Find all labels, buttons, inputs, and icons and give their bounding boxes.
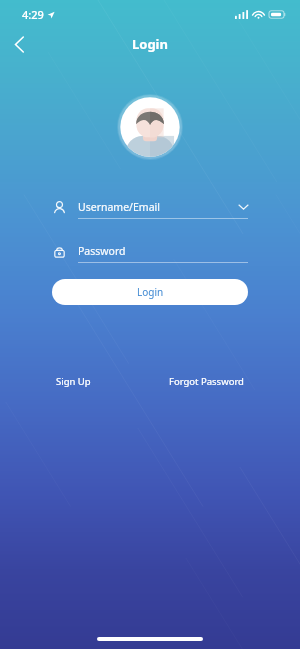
button[interactable]: Login bbox=[52, 279, 248, 305]
staticText: Password bbox=[78, 244, 126, 258]
staticText: Login bbox=[137, 285, 164, 299]
button[interactable]: Forgot Password bbox=[163, 371, 250, 392]
button[interactable]: Back bbox=[4, 29, 34, 59]
button[interactable]: Sign Up bbox=[50, 371, 97, 392]
button[interactable]: Password bbox=[52, 240, 248, 263]
staticText: Login bbox=[132, 35, 168, 53]
staticText: Sign Up bbox=[56, 375, 91, 388]
button[interactable]: Username/Email bbox=[52, 196, 248, 219]
staticText: 4:29 bbox=[22, 7, 44, 22]
staticText: Username/Email bbox=[78, 200, 160, 214]
staticText: Forgot Password bbox=[169, 375, 244, 388]
